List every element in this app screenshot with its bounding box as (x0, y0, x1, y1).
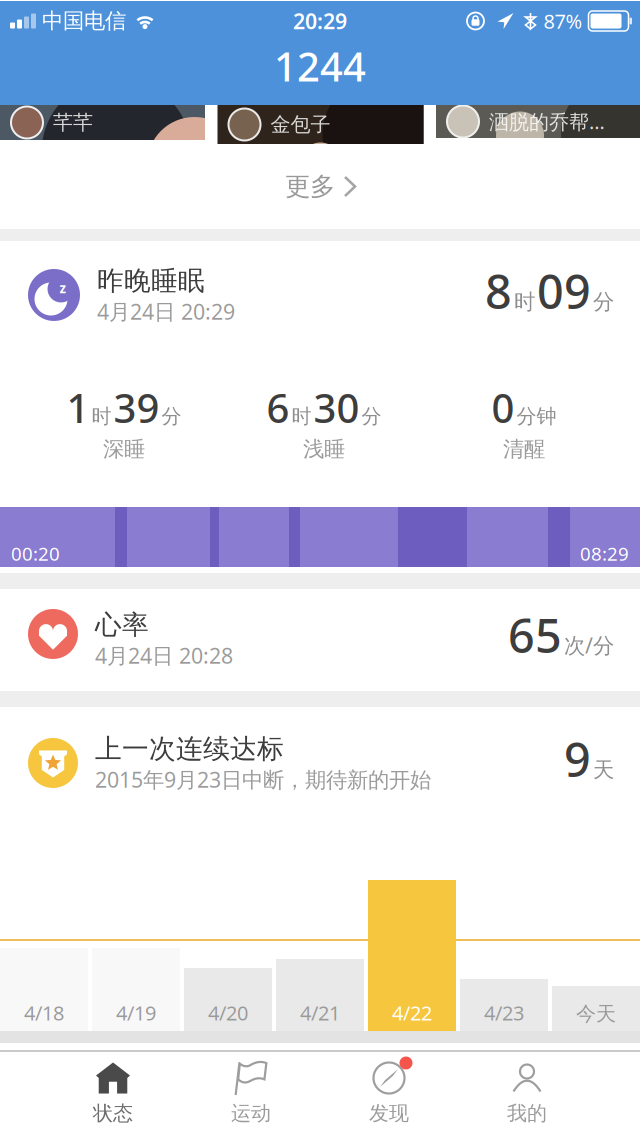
staticText: 1244 (274, 39, 366, 92)
button[interactable]: 发现 (320, 1061, 458, 1126)
staticText: 65 (508, 604, 562, 666)
staticText: 8 (485, 260, 512, 322)
staticText: 心率 (95, 608, 149, 641)
staticText: 08:29 (580, 541, 629, 566)
staticText: 4月24日 20:28 (95, 641, 233, 669)
staticText: 我的 (507, 1101, 547, 1126)
button[interactable]: 心率 (0, 589, 640, 691)
button[interactable]: 我的 (458, 1061, 596, 1126)
staticText: 分 (361, 404, 381, 429)
staticText: 浅睡 (303, 436, 345, 462)
button[interactable]: 更多 (0, 144, 640, 229)
staticText: 分 (593, 289, 614, 315)
staticText: 分钟 (516, 404, 556, 429)
button[interactable]: 洒脱的乔帮… (436, 105, 640, 138)
staticText: 时 (91, 404, 111, 429)
staticText: 1 (66, 381, 89, 434)
staticText: 清醒 (503, 436, 545, 462)
staticText: 09 (537, 260, 591, 322)
button[interactable]: 金包子 (217, 105, 423, 144)
staticText: 上一次连续达标 (95, 732, 284, 765)
staticText: z (59, 279, 66, 297)
staticText: 芊芊 (53, 110, 93, 135)
staticText: 发现 (369, 1101, 409, 1126)
staticText: 4月24日 20:29 (97, 297, 235, 325)
button[interactable]: 运动 (182, 1061, 320, 1126)
staticText: 9 (564, 728, 591, 790)
staticText: 中国电信 (42, 8, 126, 34)
button[interactable]: z (0, 241, 640, 573)
staticText: 4/18 (24, 999, 64, 1026)
staticText: 0 (491, 381, 514, 434)
staticText: 30 (313, 381, 359, 434)
staticText: 运动 (231, 1101, 271, 1126)
staticText: 深睡 (103, 436, 145, 462)
button[interactable]: 上一次连续达标 (0, 707, 640, 1031)
staticText: 4/23 (484, 999, 524, 1026)
staticText: 2015年9月23日中断，期待新的开始 (95, 765, 431, 793)
staticText: 次/分 (564, 631, 614, 659)
staticText: 4/20 (208, 999, 248, 1026)
staticText: 4/19 (116, 999, 156, 1026)
staticText: 洒脱的乔帮… (489, 108, 605, 135)
staticText: 4/21 (300, 999, 340, 1026)
staticText: 6 (266, 381, 289, 434)
staticText: 00:20 (11, 541, 60, 566)
staticText: 状态 (93, 1101, 133, 1126)
staticText: 时 (291, 404, 311, 429)
staticText: 今天 (576, 1001, 616, 1026)
staticText: 金包子 (270, 112, 330, 137)
staticText: 4/22 (392, 999, 432, 1026)
staticText: 87% (543, 8, 582, 34)
staticText: 20:29 (293, 7, 347, 35)
staticText: 天 (593, 757, 614, 783)
staticText: 时 (514, 289, 535, 315)
button[interactable]: 芊芊 (0, 105, 205, 140)
staticText: 更多 (285, 171, 335, 202)
button[interactable]: 状态 (44, 1061, 182, 1126)
staticText: 39 (113, 381, 159, 434)
staticText: 分 (161, 404, 181, 429)
staticText: 昨晚睡眠 (97, 264, 205, 297)
